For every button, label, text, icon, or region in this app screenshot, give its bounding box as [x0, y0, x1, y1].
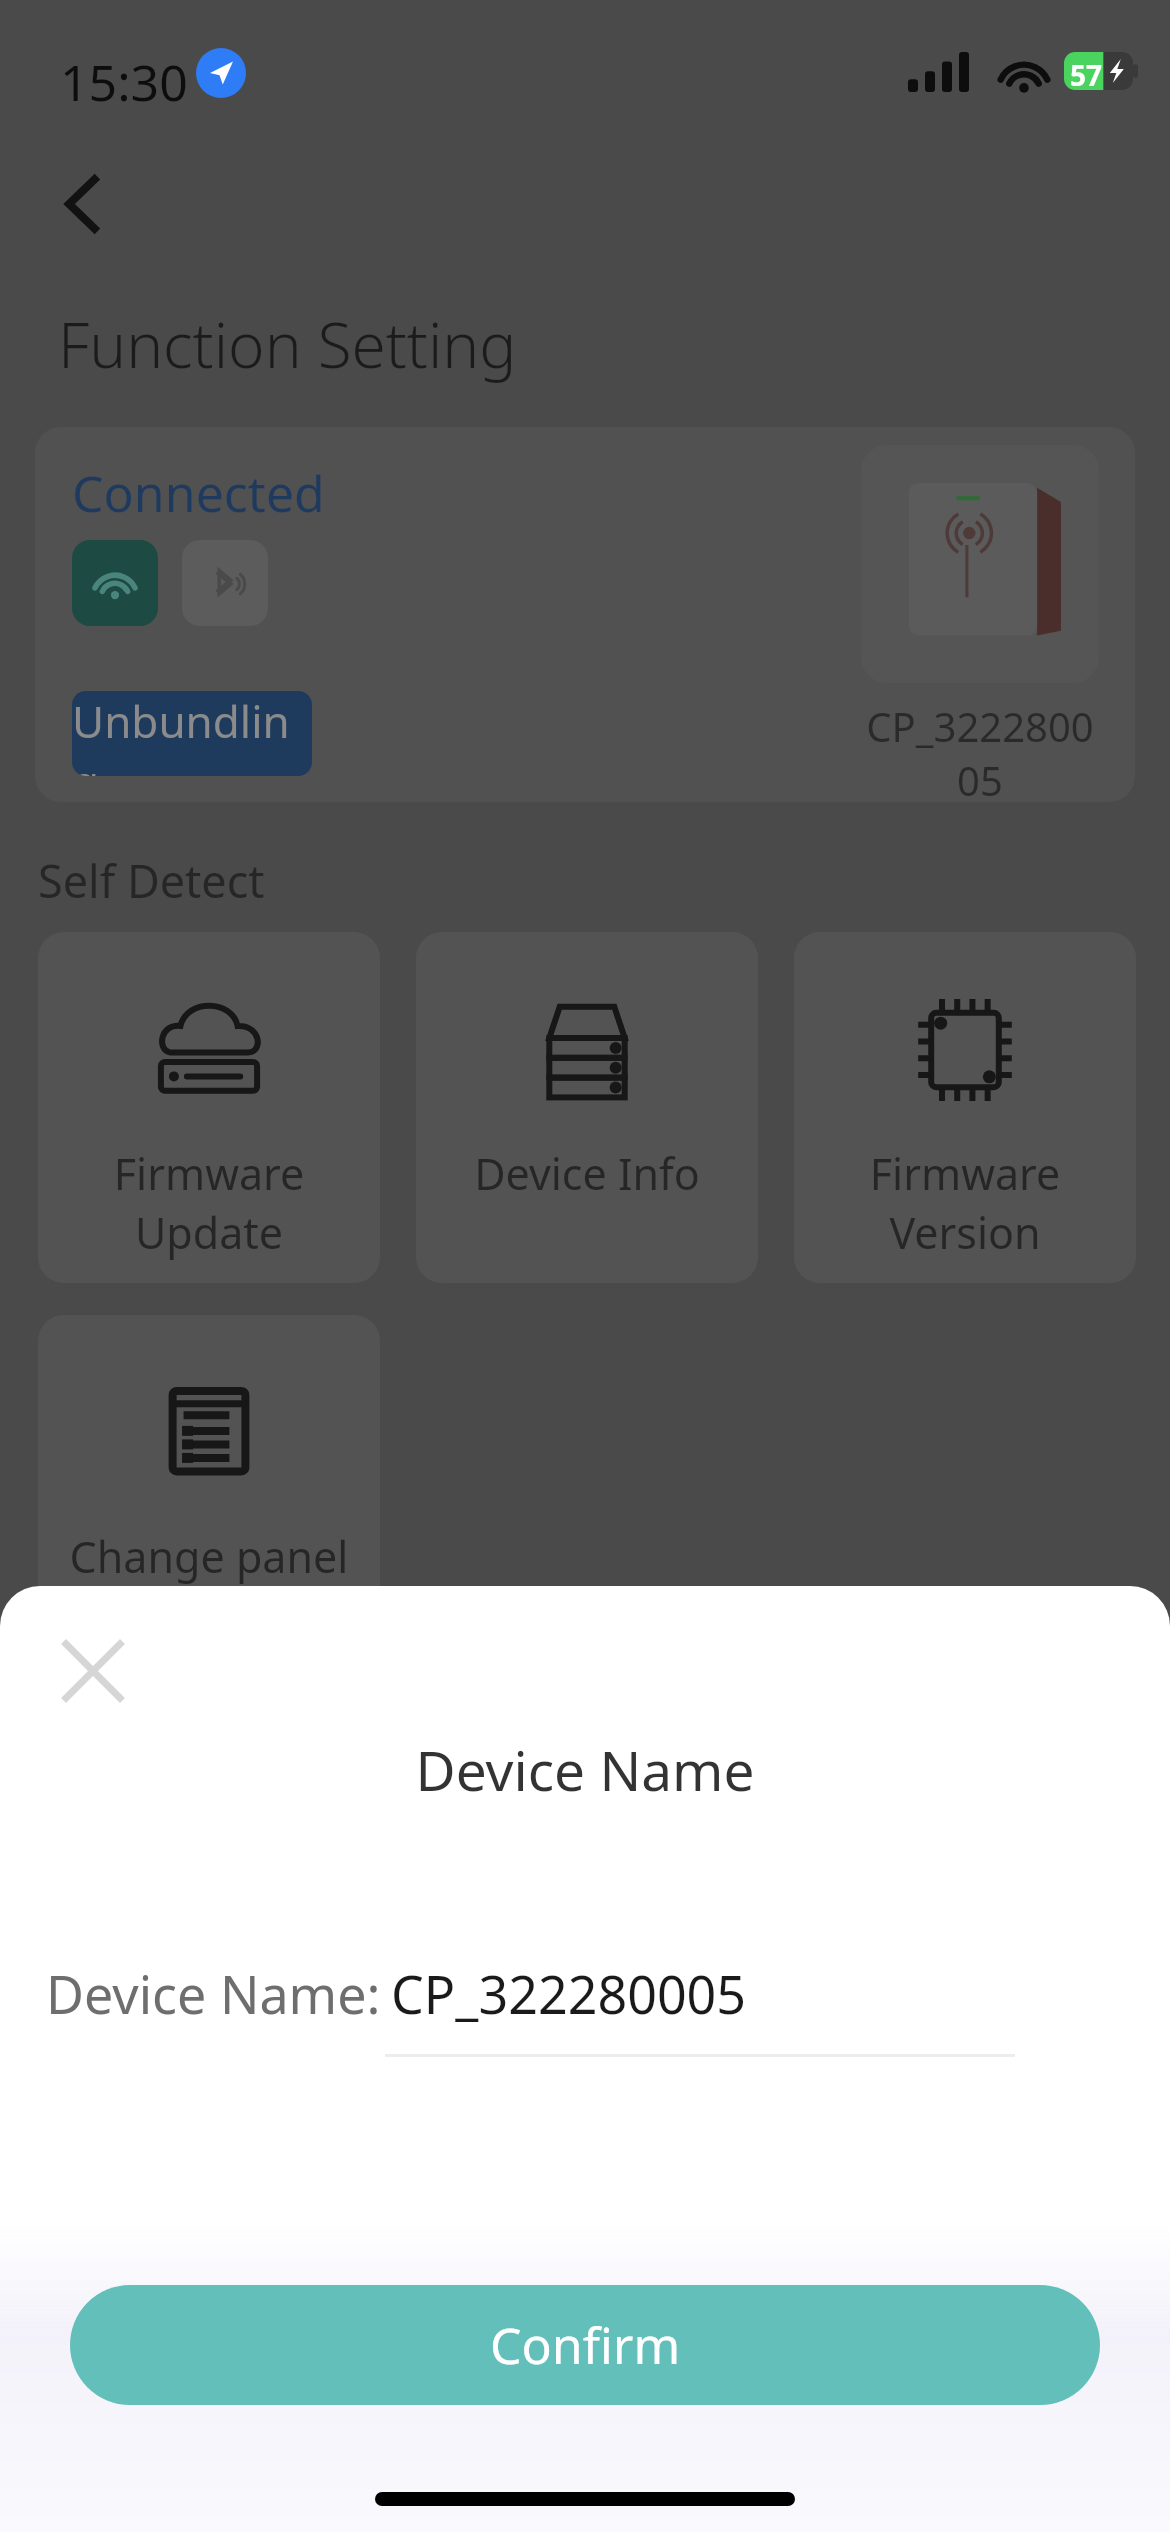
- staticText: Function Setting: [58, 302, 517, 386]
- staticText: CP_322280005: [861, 699, 1099, 802]
- button[interactable]: Change panel: [38, 1315, 380, 1666]
- staticText: Connected: [72, 459, 325, 527]
- button[interactable]: Wi-Fi connected: [72, 540, 158, 626]
- staticText: Change panel: [38, 1527, 380, 1586]
- staticText: CP_322280005: [391, 1958, 747, 2029]
- staticText: Firmware Update: [38, 1144, 380, 1262]
- staticText: Firmware Version: [794, 1144, 1136, 1262]
- staticText: Device Name: [0, 1732, 1170, 1807]
- button[interactable]: Close: [56, 1634, 130, 1708]
- button[interactable]: Device Info: [416, 932, 758, 1283]
- staticText: Self Detect: [38, 850, 265, 911]
- staticText: 15:30: [60, 48, 188, 116]
- button[interactable]: Bluetooth: [182, 540, 268, 626]
- button[interactable]: Firmware Version: [794, 932, 1136, 1283]
- staticText: Device Info: [416, 1144, 758, 1203]
- button[interactable]: Confirm: [70, 2285, 1100, 2405]
- staticText: Confirm: [490, 2311, 681, 2379]
- button[interactable]: Firmware Update: [38, 932, 380, 1283]
- staticText: Unbundling: [72, 691, 312, 776]
- staticText: Device Name:: [46, 1958, 381, 2029]
- staticText: 57: [1070, 56, 1103, 94]
- button[interactable]: Unbundling: [72, 691, 312, 776]
- button[interactable]: Back: [40, 160, 128, 248]
